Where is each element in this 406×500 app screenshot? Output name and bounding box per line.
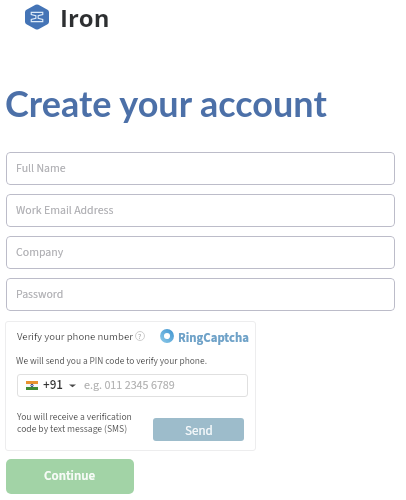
staticText: Password — [16, 286, 64, 303]
staticText: Company — [16, 244, 64, 261]
staticText: e.g. 011 2345 6789 — [84, 377, 175, 394]
staticText: Verify your phone number — [17, 329, 133, 344]
staticText: ? — [138, 331, 142, 341]
staticText: Create your account — [5, 81, 327, 124]
staticText: Iron — [60, 1, 110, 34]
button[interactable]: Iron logo — [25, 4, 49, 30]
staticText: RingCaptcha — [178, 329, 249, 347]
button[interactable]: +91 — [17, 374, 248, 397]
button[interactable]: Company — [6, 236, 395, 269]
staticText: +91 — [43, 376, 64, 395]
button[interactable]: Full Name — [6, 152, 395, 185]
staticText: We will send you a PIN code to verify yo… — [16, 354, 207, 367]
staticText: Work Email Address — [16, 202, 114, 219]
staticText: Send — [185, 422, 213, 441]
button[interactable]: Send — [153, 418, 244, 441]
button[interactable]: Help — [135, 331, 145, 341]
staticText: Continue — [44, 467, 96, 486]
staticText: You will receive a verification code by … — [17, 410, 132, 436]
button[interactable]: Work Email Address — [6, 194, 395, 227]
button[interactable]: Password — [6, 278, 395, 311]
staticText: Full Name — [16, 160, 66, 177]
button[interactable]: Continue — [6, 459, 134, 494]
